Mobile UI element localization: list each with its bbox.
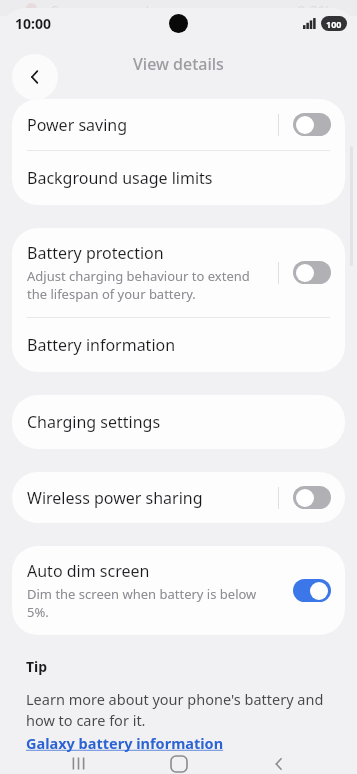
button[interactable]: Battery information bbox=[12, 318, 345, 372]
staticText: Galaxy battery information bbox=[26, 733, 224, 753]
staticText: Tip bbox=[26, 657, 48, 676]
staticText: 10:00 bbox=[15, 14, 51, 33]
button[interactable]: Back bbox=[12, 54, 58, 100]
button[interactable]: Wireless power sharing bbox=[12, 472, 345, 523]
staticText: Samsung capture bbox=[51, 0, 175, 16]
button[interactable]: On bbox=[293, 579, 331, 602]
button[interactable]: Galaxy battery information bbox=[26, 733, 224, 753]
staticText: Auto dim screen bbox=[27, 560, 150, 582]
button[interactable]: Back bbox=[257, 753, 301, 774]
button[interactable]: Off bbox=[293, 261, 331, 284]
staticText: Learn more about your phone's battery an… bbox=[26, 689, 331, 731]
staticText: Power saving bbox=[27, 114, 128, 136]
button[interactable]: Background usage limits bbox=[12, 151, 345, 205]
button[interactable]: Auto dim screen bbox=[12, 546, 345, 635]
button[interactable]: Battery protection bbox=[12, 228, 345, 317]
staticText: Background usage limits bbox=[27, 167, 213, 189]
staticText: 0.3% bbox=[297, 0, 331, 16]
staticText: Adjust charging behaviour to extend the … bbox=[27, 267, 268, 303]
staticText: Charging settings bbox=[27, 411, 161, 433]
button[interactable]: Recents bbox=[56, 753, 100, 774]
button[interactable]: Charging settings bbox=[12, 395, 345, 449]
staticText: 100 bbox=[326, 18, 342, 30]
staticText: Dim the screen when battery is below 5%. bbox=[27, 585, 268, 621]
staticText: Wireless power sharing bbox=[27, 487, 203, 509]
staticText: Battery information bbox=[27, 334, 176, 356]
button[interactable]: Off bbox=[293, 486, 331, 509]
button[interactable]: Off bbox=[293, 113, 331, 136]
button[interactable]: Home bbox=[157, 753, 201, 774]
button[interactable]: Power saving bbox=[12, 99, 345, 150]
staticText: Battery protection bbox=[27, 242, 164, 264]
staticText: View details bbox=[133, 53, 224, 75]
